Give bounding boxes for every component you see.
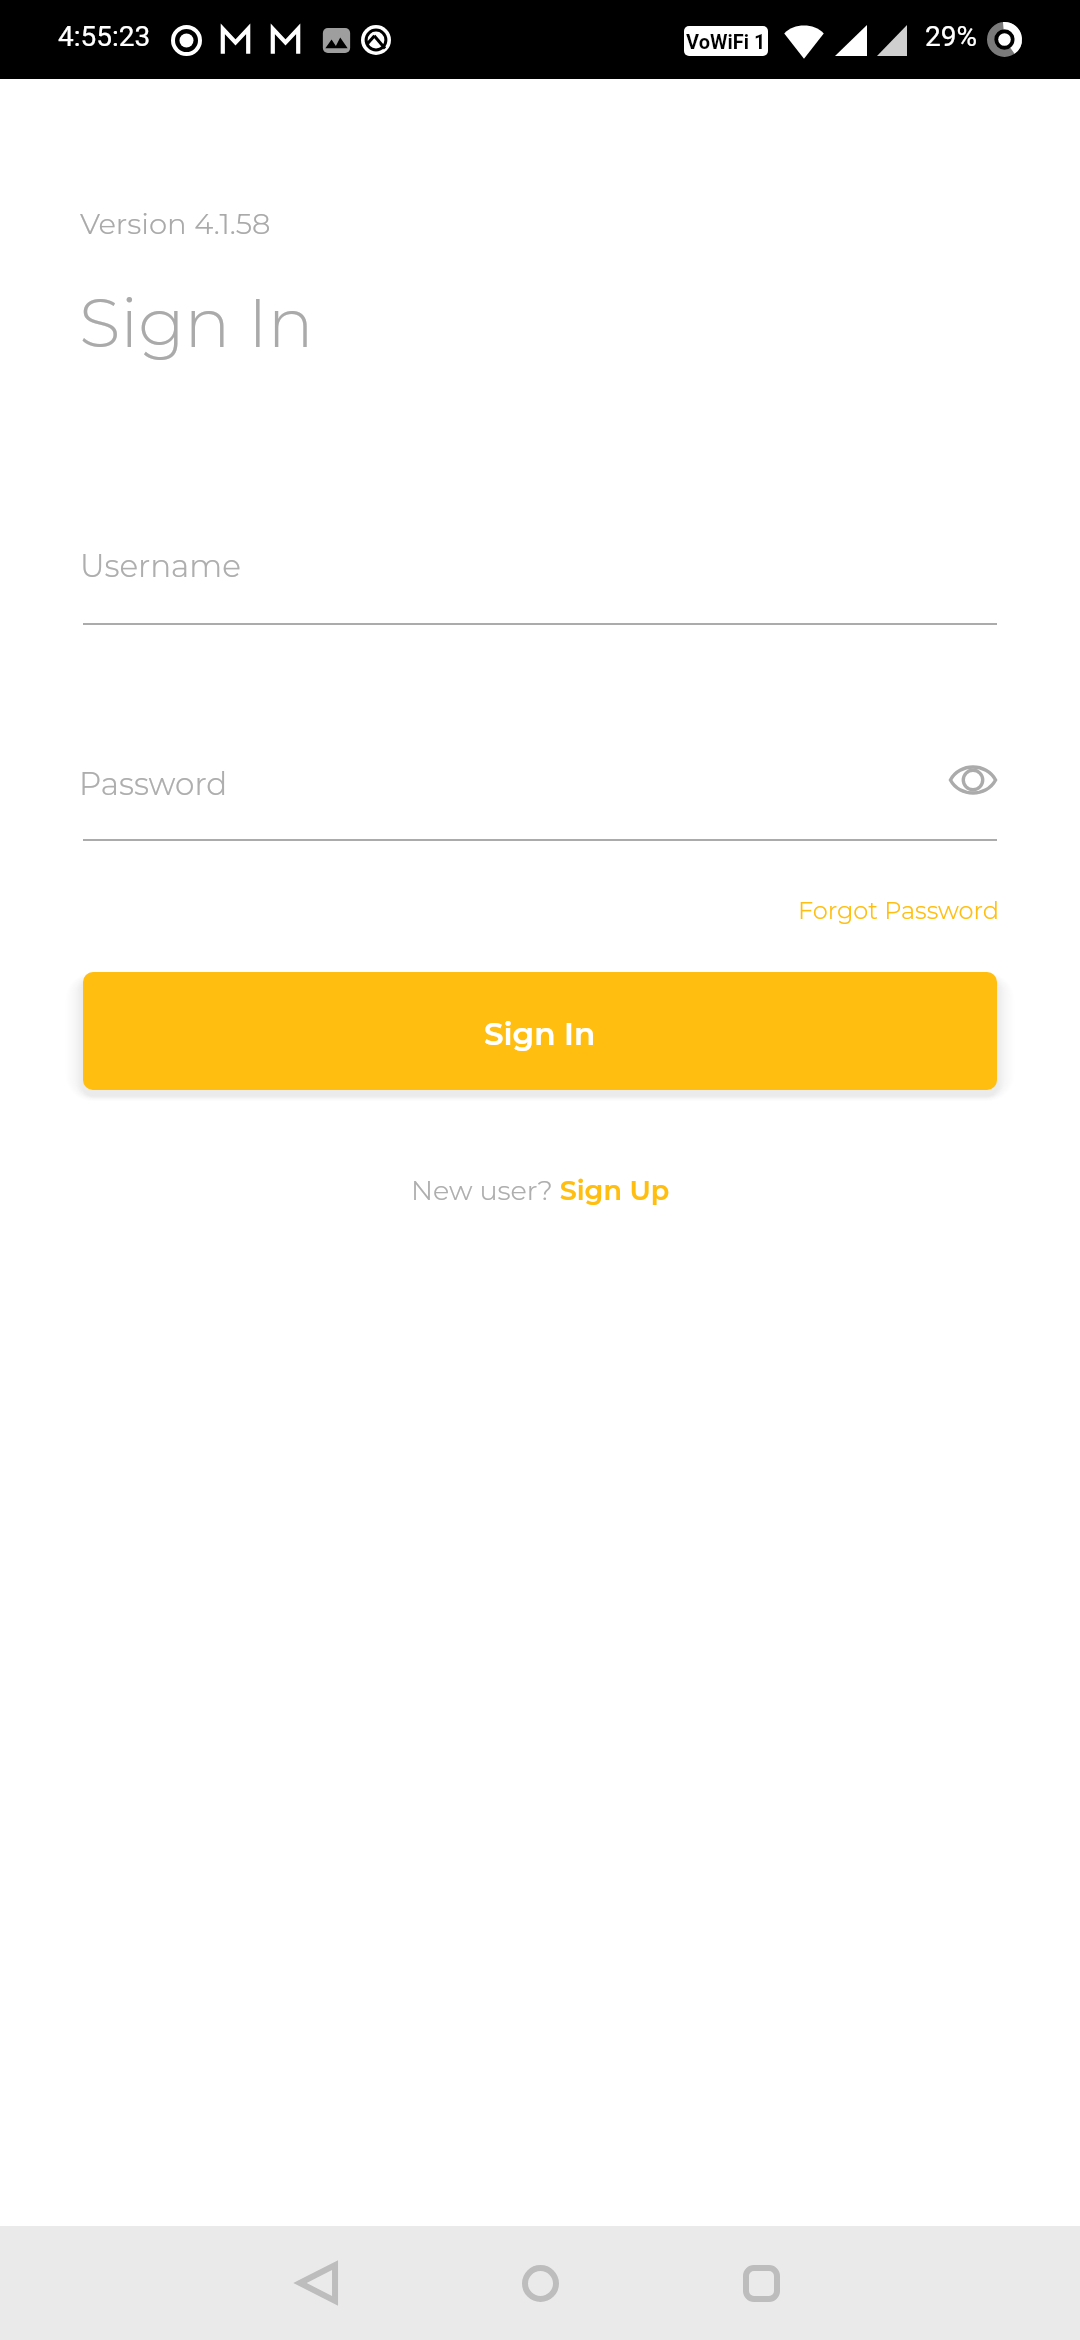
staticText: Sign In — [79, 281, 314, 364]
staticText: Version 4.1.58 — [80, 206, 271, 241]
staticText: Forgot Password — [798, 896, 999, 925]
button[interactable]: Recent apps — [705, 2241, 818, 2325]
staticText: 29% — [925, 20, 977, 53]
button[interactable]: Sign In — [83, 972, 997, 1090]
staticText: Sign In — [484, 1015, 596, 1053]
staticText: VoWiFi 1 — [686, 30, 766, 53]
button[interactable]: Username — [83, 539, 997, 627]
button[interactable]: New user? Sign Up — [397, 1162, 684, 1219]
staticText: Username — [80, 547, 241, 585]
button[interactable]: Password — [83, 757, 929, 843]
staticText: New user? Sign Up — [411, 1174, 670, 1207]
staticText: 4:55:23 — [58, 20, 151, 53]
button[interactable]: Back — [261, 2241, 374, 2325]
button[interactable]: Show password — [941, 748, 1005, 812]
button[interactable]: Home — [484, 2241, 597, 2325]
button[interactable]: Forgot Password — [790, 884, 1001, 937]
staticText: Password — [79, 765, 228, 803]
